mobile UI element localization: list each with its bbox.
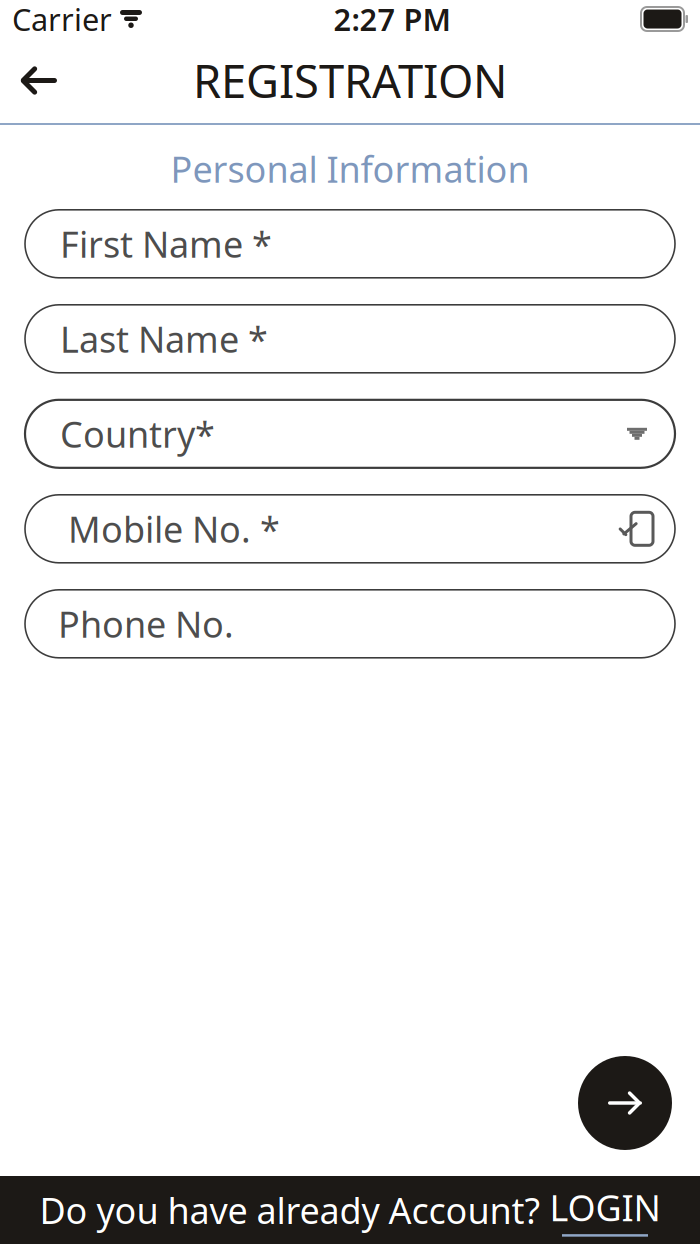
staticText: Mobile No. * (68, 505, 280, 553)
staticText: Do you have already Account? (39, 1186, 540, 1234)
staticText: LOGIN (549, 1183, 660, 1231)
button[interactable]: Back (6, 48, 70, 112)
staticText: REGISTRATION (193, 50, 507, 111)
staticText: 2:27 PM (333, 0, 450, 39)
staticText: First Name * (60, 220, 272, 268)
button[interactable]: Verify mobile number (613, 506, 659, 552)
button[interactable]: Country* (25, 400, 675, 468)
staticText: Carrier (12, 0, 112, 39)
staticText: Personal Information (170, 145, 529, 193)
button[interactable]: Do you have already Account? (0, 1176, 700, 1244)
staticText: Last Name * (60, 315, 268, 363)
button[interactable]: Next (578, 1056, 672, 1150)
staticText: Country* (60, 410, 215, 458)
staticText: Phone No. (58, 600, 234, 648)
